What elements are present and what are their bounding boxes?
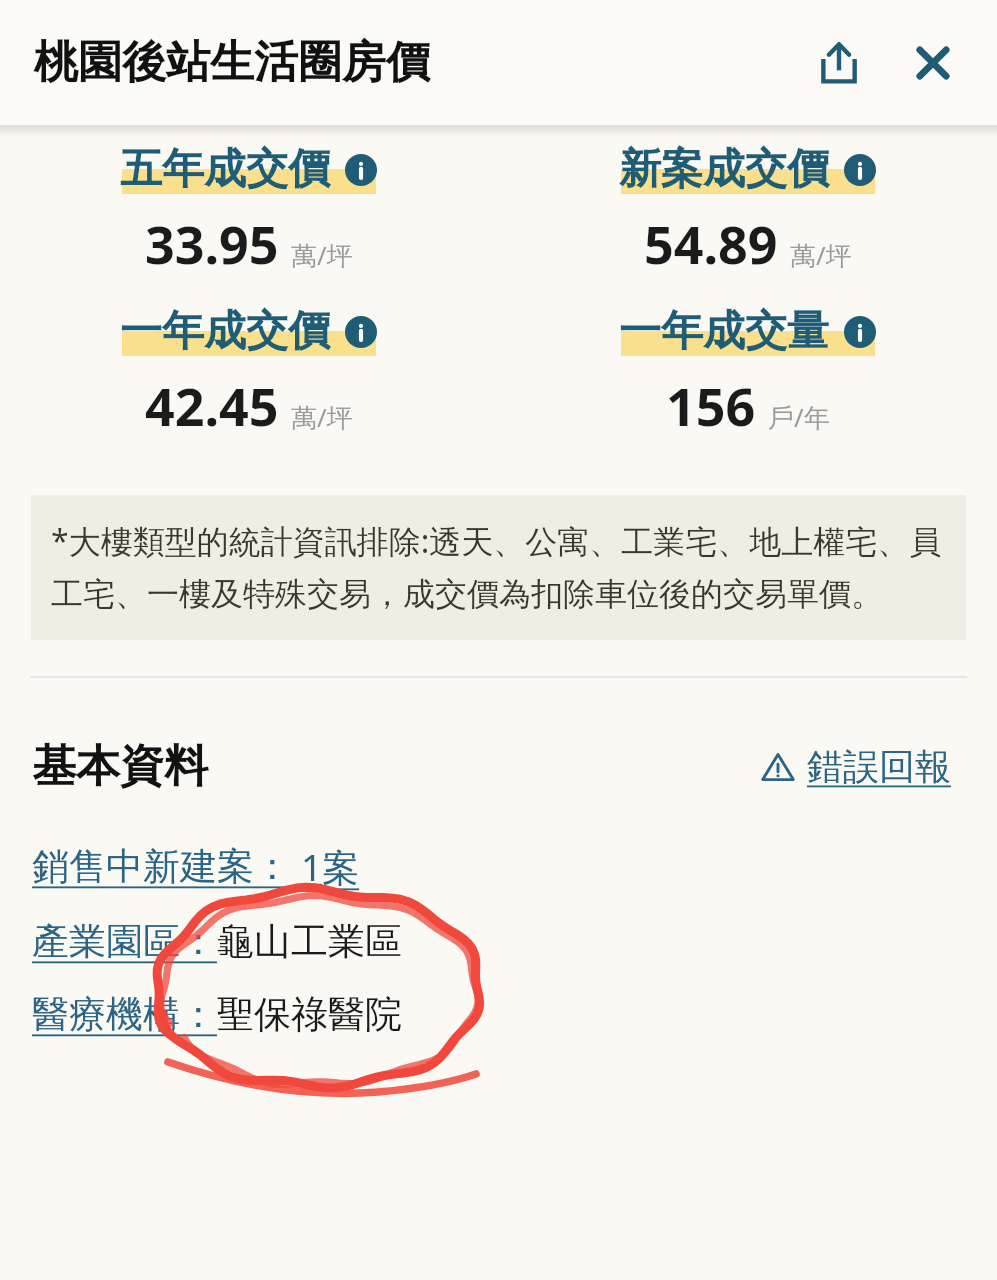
staticText: 一年成交量 bbox=[619, 305, 829, 358]
button[interactable]: Info about 一年成交價 bbox=[344, 315, 378, 349]
staticText: 33.95 bbox=[145, 208, 279, 279]
staticText: 54.89 bbox=[644, 208, 778, 279]
staticText: 五年成交價 bbox=[120, 143, 330, 196]
button[interactable]: 銷售中新建案： bbox=[0, 835, 997, 898]
staticText: 一年成交價 bbox=[120, 305, 330, 358]
button[interactable]: 錯誤回報 bbox=[755, 738, 957, 795]
button[interactable]: Info about 一年成交量 bbox=[843, 315, 877, 349]
staticText: 聖保祿醫院 bbox=[217, 991, 402, 1038]
staticText: 桃園後站生活圈房價 bbox=[34, 35, 801, 90]
button[interactable]: 1案 bbox=[301, 841, 360, 892]
staticText: 銷售中新建案： bbox=[32, 843, 291, 890]
button[interactable]: 一年成交價 bbox=[0, 305, 498, 441]
staticText: 基本資料 bbox=[32, 739, 208, 794]
staticText: 新案成交價 bbox=[619, 143, 829, 196]
staticText: 醫療機構： bbox=[32, 991, 217, 1038]
button[interactable]: 產業園區： bbox=[0, 912, 997, 971]
staticText: *大樓類型的統計資訊排除:透天、公寓、工業宅、地上權宅、員工宅、一樓及特殊交易，… bbox=[51, 519, 950, 614]
staticText: 萬/坪 bbox=[790, 237, 852, 273]
button[interactable]: 新案成交價 bbox=[498, 143, 997, 279]
staticText: 龜山工業區 bbox=[217, 918, 402, 965]
button[interactable]: Info about 新案成交價 bbox=[843, 153, 877, 187]
staticText: 156 bbox=[666, 370, 756, 441]
button[interactable]: 一年成交量 bbox=[498, 305, 997, 441]
staticText: 萬/坪 bbox=[291, 399, 353, 435]
button[interactable]: Close bbox=[895, 25, 971, 101]
staticText: 戶/年 bbox=[768, 399, 830, 435]
button[interactable]: Info about 五年成交價 bbox=[344, 153, 378, 187]
staticText: 萬/坪 bbox=[291, 237, 353, 273]
button[interactable]: 五年成交價 bbox=[0, 143, 498, 279]
staticText: 錯誤回報 bbox=[807, 744, 951, 789]
staticText: 產業園區： bbox=[32, 918, 217, 965]
button[interactable]: Share bbox=[801, 25, 877, 101]
staticText: 42.45 bbox=[145, 370, 279, 441]
button[interactable]: 醫療機構： bbox=[0, 985, 997, 1044]
